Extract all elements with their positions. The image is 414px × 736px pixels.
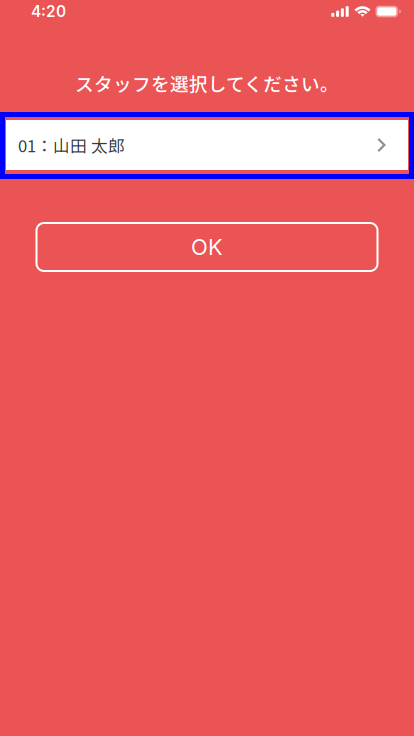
staticText: 4:20 <box>31 2 66 21</box>
button[interactable]: 01：山田 太郎 <box>0 112 414 179</box>
staticText: スタッフを選択してください。 <box>75 69 339 96</box>
staticText: 01：山田 太郎 <box>18 133 125 157</box>
staticText: OK <box>191 234 223 260</box>
button[interactable]: OK <box>36 223 377 271</box>
